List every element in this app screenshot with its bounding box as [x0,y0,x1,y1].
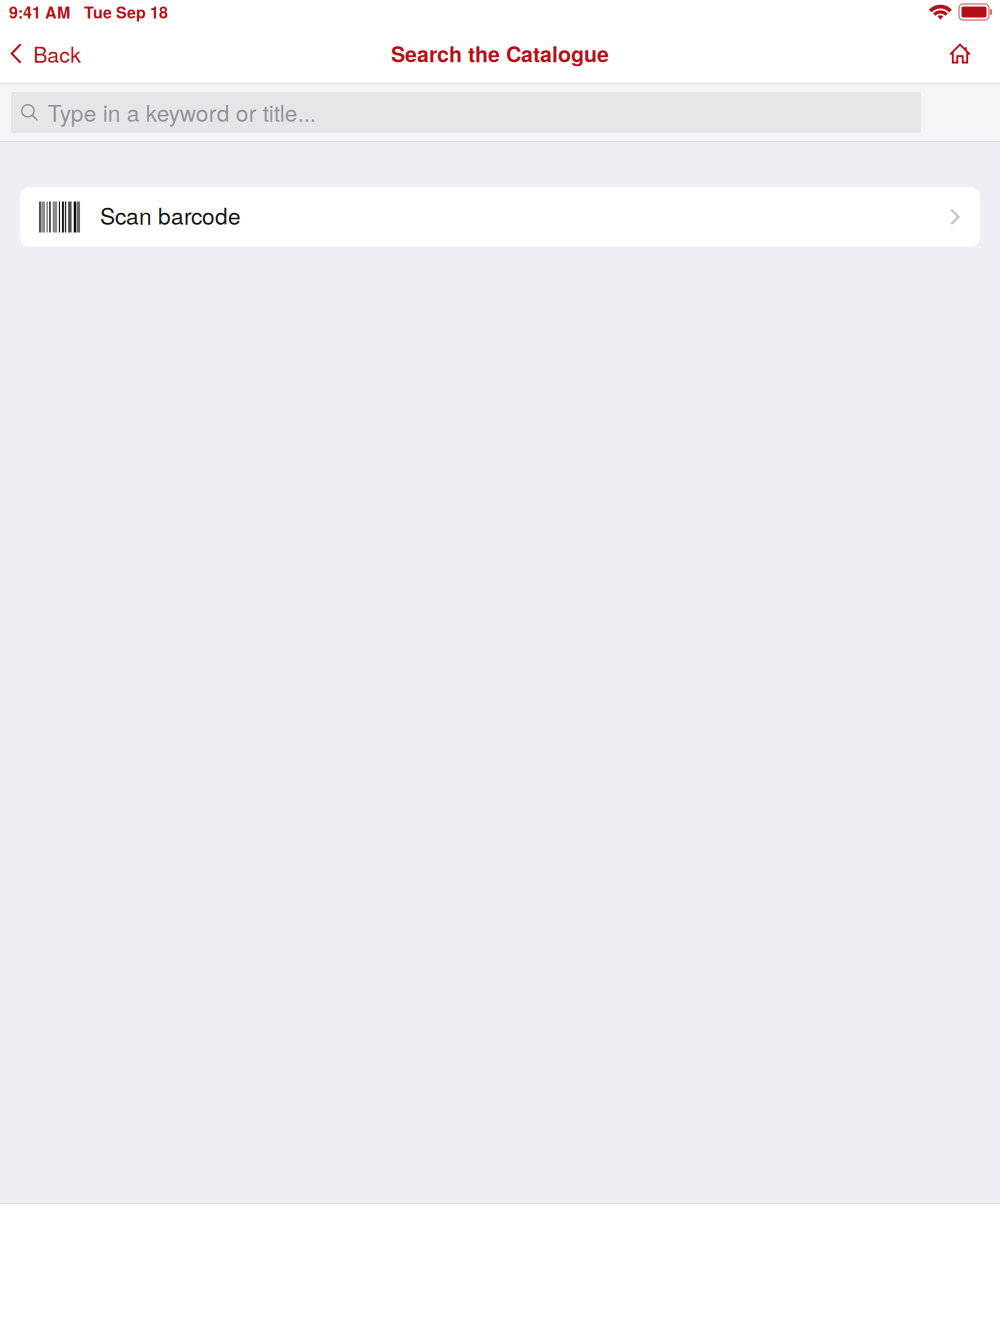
button[interactable]: Home [931,31,1000,76]
staticText: Back [33,38,81,69]
staticText: 9:41 AM [9,0,70,23]
staticText: Type in a keyword or title... [48,96,316,128]
button[interactable]: Scan barcode [20,187,980,247]
button[interactable]: Back [0,31,95,76]
button[interactable]: Type in a keyword or title... [11,92,921,133]
staticText: Search the Catalogue [391,38,609,69]
staticText: Tue Sep 18 [84,0,168,23]
staticText: Scan barcode [100,199,241,231]
